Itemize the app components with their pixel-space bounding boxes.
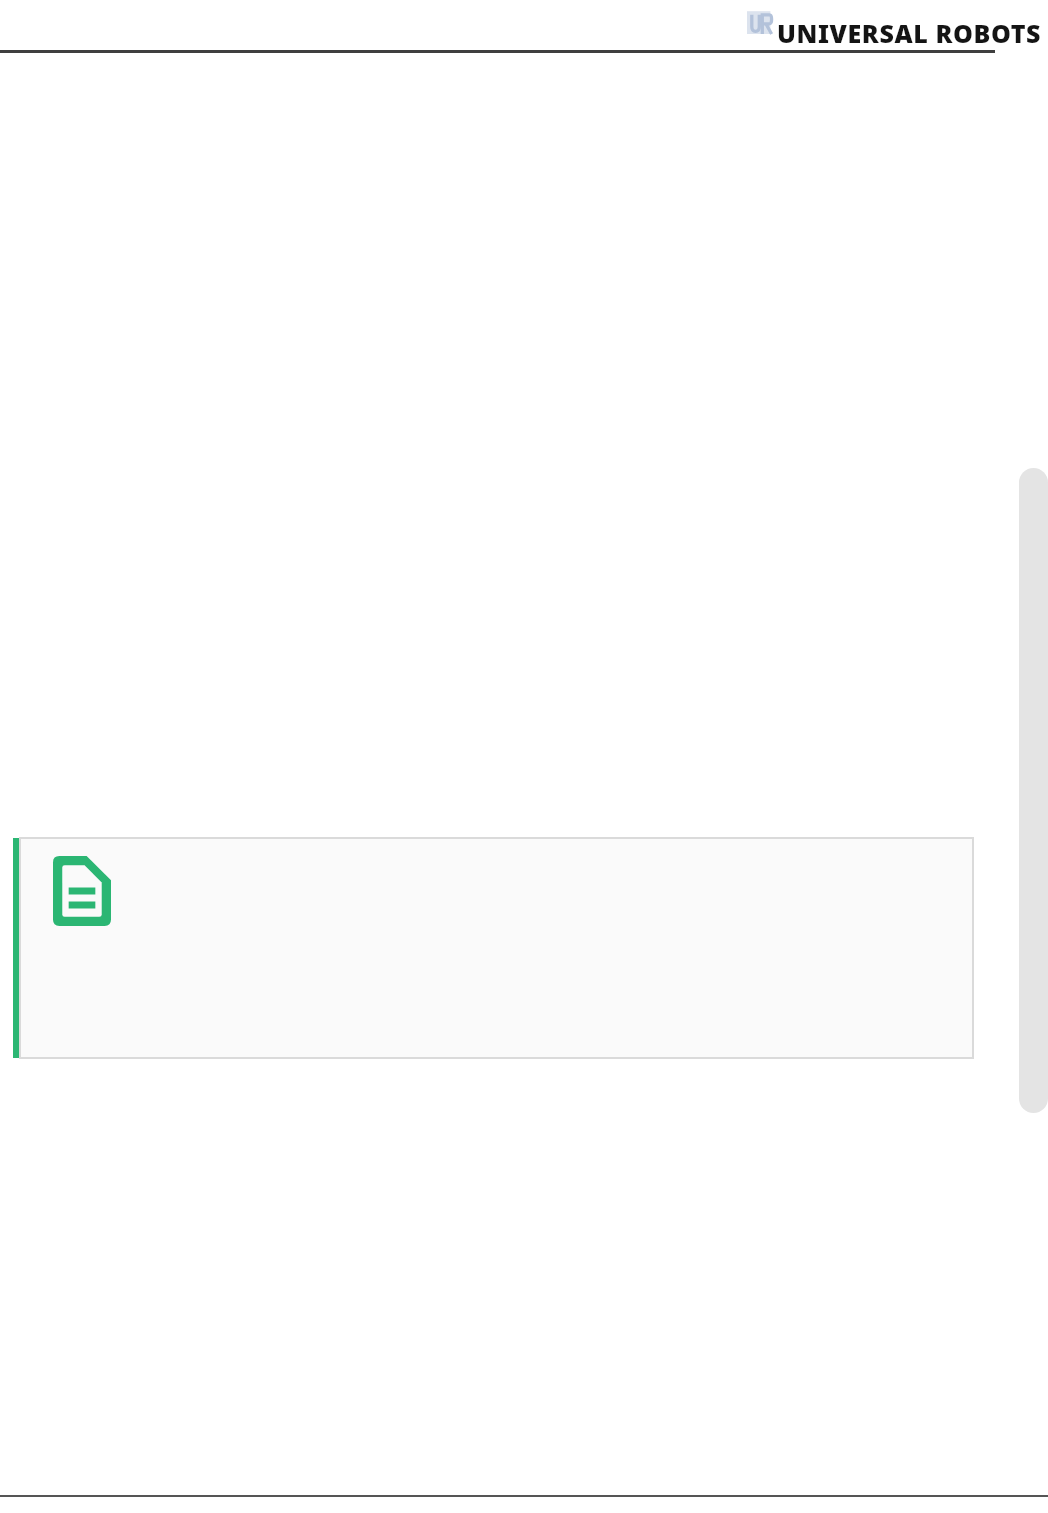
button[interactable]: Universal Robots: [747, 2, 777, 48]
button[interactable]: [13, 838, 973, 1058]
staticText: UNIVERSAL ROBOTS: [777, 16, 1042, 50]
